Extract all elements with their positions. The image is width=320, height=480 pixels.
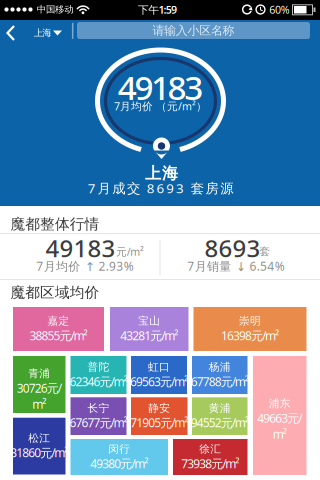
staticText: 73938元/m² [181, 456, 239, 471]
button[interactable]: 浦东 [253, 356, 306, 475]
staticText: 静安 [148, 402, 170, 415]
staticText: m² [273, 426, 287, 442]
staticText: 崇明 [239, 314, 261, 328]
staticText: 浦东 [269, 397, 291, 410]
staticText: 7月均价 （元/m²） [114, 99, 207, 113]
staticText: 长宁 [87, 402, 109, 415]
staticText: 上海 [145, 164, 178, 183]
staticText: 黄浦 [209, 402, 231, 415]
staticText: 魔都整体行情 [10, 215, 99, 233]
button[interactable]: 闵行 [70, 439, 168, 475]
button[interactable]: 虹口 [131, 356, 187, 394]
staticText: 49380元/m² [90, 456, 148, 471]
button[interactable]: 普陀 [70, 356, 126, 394]
button[interactable]: 静安 [131, 397, 187, 435]
button[interactable]: 宝山 [110, 307, 188, 351]
staticText: 94552元/m² [191, 415, 249, 431]
button[interactable]: 青浦 [13, 356, 65, 413]
staticText: 71905元/m² [130, 415, 188, 431]
staticText: 嘉定 [47, 314, 69, 328]
staticText: 31860元/m² [10, 445, 68, 461]
staticText: 60% [269, 2, 290, 17]
button[interactable]: 徐汇 [173, 439, 247, 475]
button[interactable]: 松江 [13, 418, 65, 474]
staticText: 套 [259, 245, 270, 258]
staticText: 7月成交 8693 套房源 [88, 179, 233, 197]
staticText: 49663元/ [257, 410, 302, 426]
button[interactable]: 搜索 [77, 22, 310, 39]
staticText: 徐汇 [199, 442, 221, 456]
staticText: 元/m² [116, 244, 144, 259]
staticText: 49183 [45, 232, 115, 264]
staticText: 青浦 [28, 367, 50, 380]
staticText: 8693 [204, 232, 260, 264]
button[interactable]: 上海 [23, 20, 71, 46]
staticText: 普陀 [87, 360, 109, 374]
staticText: m² [32, 396, 46, 412]
staticText: 上海 [34, 27, 51, 39]
staticText: 请输入小区名称 [152, 23, 235, 38]
staticText: 下午1:59 [138, 2, 177, 17]
staticText: 49183 [118, 65, 203, 109]
button[interactable]: 长宁 [70, 397, 126, 435]
staticText: 67677元/m² [69, 415, 127, 431]
button[interactable]: 嘉定 [13, 307, 104, 351]
staticText: 虹口 [148, 360, 170, 374]
staticText: 魔都区域均价 [10, 283, 99, 301]
staticText: 中国移动 [37, 4, 73, 15]
staticText: 7月销量 ↓ 6.54% [187, 258, 285, 274]
button[interactable]: 返回 [0, 21, 24, 45]
staticText: 69563元/m² [130, 374, 188, 389]
staticText: 宝山 [138, 314, 160, 328]
staticText: 38855元/m² [29, 328, 87, 343]
button[interactable]: 杨浦 [192, 356, 247, 394]
staticText: 闵行 [108, 442, 130, 456]
staticText: 43281元/m² [120, 328, 178, 343]
staticText: 30726元/ [17, 380, 62, 396]
staticText: 67788元/m² [191, 374, 249, 389]
button[interactable]: 黄浦 [192, 397, 247, 435]
staticText: 松江 [28, 432, 50, 445]
staticText: 杨浦 [209, 360, 231, 374]
staticText: 62346元/m² [69, 374, 127, 389]
staticText: 7月均价 ↑ 2.93% [36, 258, 134, 274]
staticText: 16398元/m² [221, 328, 279, 343]
button[interactable]: 崇明 [193, 307, 306, 351]
